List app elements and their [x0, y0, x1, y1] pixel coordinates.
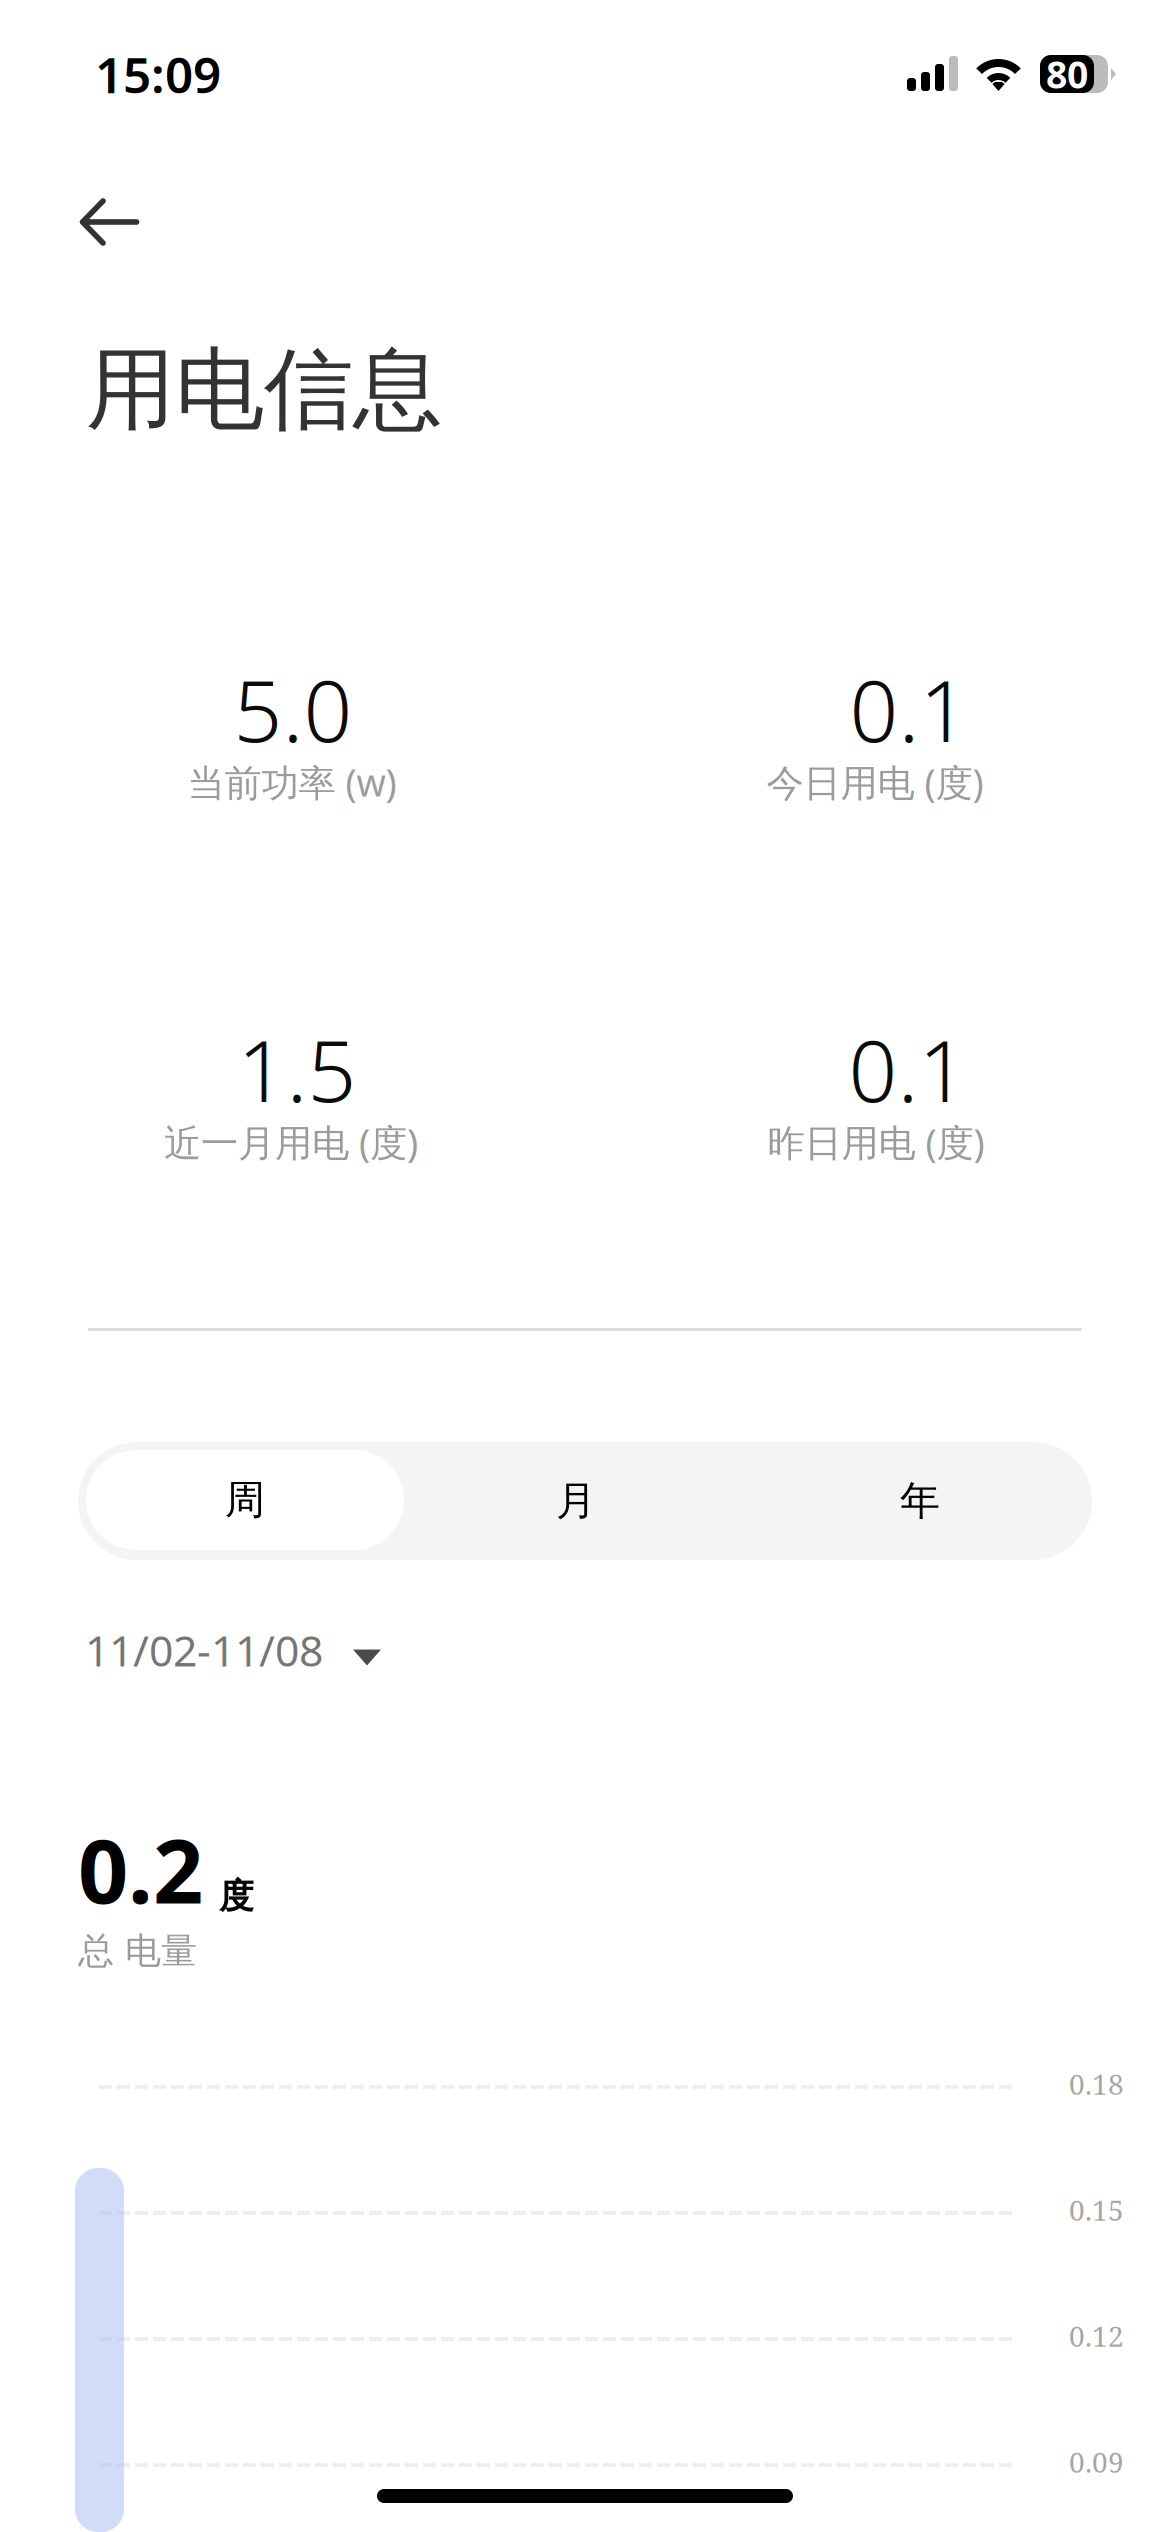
staticText: 月 — [556, 1476, 596, 1525]
button[interactable]: 11/02-11/08 — [56, 1602, 456, 1698]
staticText: 周 — [225, 1475, 265, 1524]
staticText: 年 — [900, 1476, 940, 1525]
staticText: 5.0 — [233, 652, 352, 766]
staticText: 11/02-11/08 — [85, 1622, 323, 1678]
button[interactable]: 年 — [748, 1442, 1092, 1560]
button[interactable]: Back — [40, 167, 180, 277]
staticText: 当前功率 (w) — [187, 757, 396, 807]
staticText: 0.1 — [849, 652, 968, 766]
staticText: 0.09 — [1069, 2443, 1124, 2481]
button[interactable]: 月 — [404, 1442, 748, 1560]
staticText: 80 — [1046, 49, 1088, 99]
staticText: 今日用电 (度) — [766, 757, 983, 807]
button[interactable]: 周 — [86, 1450, 404, 1550]
staticText: 总 电量 — [78, 1929, 197, 1973]
staticText: 0.18 — [1069, 2065, 1124, 2103]
staticText: 昨日用电 (度) — [767, 1117, 984, 1167]
staticText: 近一月用电 (度) — [164, 1117, 418, 1167]
staticText: 0.1 — [848, 1012, 967, 1126]
staticText: 0.12 — [1069, 2317, 1124, 2355]
staticText: 15:09 — [95, 41, 221, 107]
staticText: 0.2 — [78, 1811, 203, 1928]
staticText: 0.15 — [1069, 2191, 1124, 2229]
staticText: 用电信息 — [86, 335, 442, 445]
staticText: 1.5 — [237, 1012, 356, 1126]
staticText: 度 — [219, 1875, 254, 1918]
